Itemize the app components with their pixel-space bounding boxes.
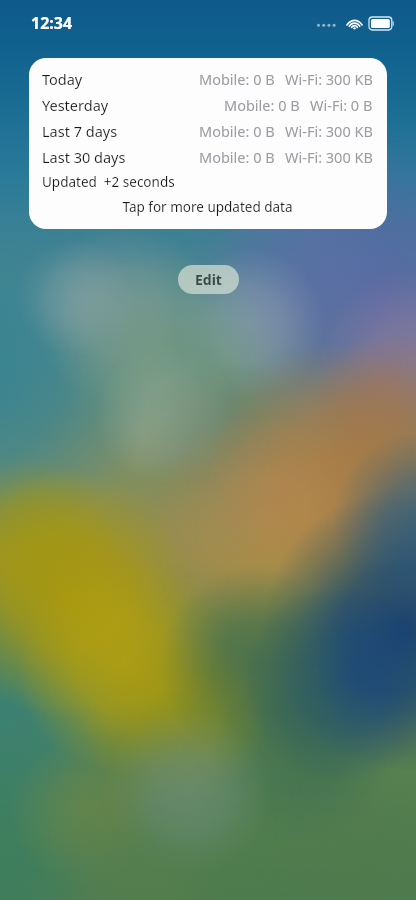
staticText: Wi-Fi: 300 KB — [285, 69, 373, 89]
staticText: Wi-Fi: 0 B — [310, 95, 373, 115]
staticText: Last 30 days — [42, 147, 126, 167]
staticText: Today — [42, 69, 83, 89]
staticText: Last 7 days — [42, 121, 118, 141]
staticText: Yesterday — [42, 95, 109, 115]
staticText: 12:34 — [31, 12, 73, 34]
button[interactable]: Last 30 days — [42, 144, 373, 170]
button[interactable]: Yesterday — [42, 92, 373, 118]
staticText: Wi-Fi: 300 KB — [285, 147, 373, 167]
staticText: Edit — [195, 270, 222, 289]
staticText: Updated +2 seconds — [42, 173, 175, 191]
staticText: Mobile: 0 B — [224, 95, 300, 115]
staticText: Mobile: 0 B — [199, 121, 275, 141]
staticText: Mobile: 0 B — [199, 69, 275, 89]
button[interactable]: Last 7 days — [42, 118, 373, 144]
button[interactable]: Today — [29, 58, 387, 229]
button[interactable]: Edit — [178, 265, 239, 294]
button[interactable]: Today — [42, 66, 373, 92]
staticText: Mobile: 0 B — [199, 147, 275, 167]
staticText: Wi-Fi: 300 KB — [285, 121, 373, 141]
staticText: Tap for more updated data — [122, 198, 293, 216]
